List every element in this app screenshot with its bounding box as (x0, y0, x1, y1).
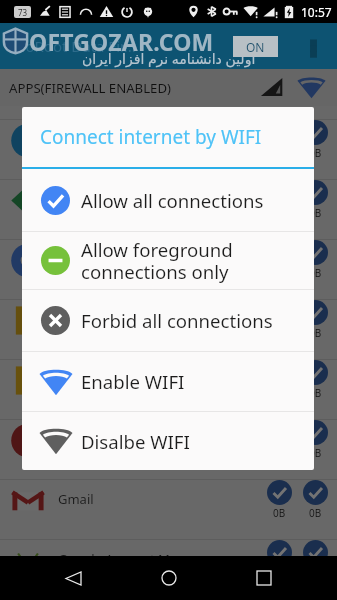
button[interactable]: Chrome (0, 240, 337, 299)
staticText: 0B (309, 386, 322, 400)
staticText: 0B (309, 506, 322, 520)
staticText: اولین دانشنامه نرم افزار ایران (82, 49, 256, 68)
button[interactable]: Back (51, 556, 95, 600)
button[interactable]: Google Account Manager (0, 540, 337, 599)
staticText: Enable WIFI (81, 369, 185, 394)
button[interactable]: Allow all connections (22, 169, 314, 231)
button[interactable]: ON (233, 36, 278, 57)
staticText: Drive (58, 310, 91, 328)
staticText: 0B (309, 446, 322, 460)
staticText: Disalbe WIFI (81, 429, 190, 454)
staticText: Calendar (58, 130, 113, 148)
staticText: Docs (58, 370, 88, 388)
staticText: 0B (309, 326, 322, 340)
staticText: ON (246, 39, 265, 55)
staticText: Chrome (58, 250, 107, 268)
button[interactable]: Drive (0, 300, 337, 359)
button[interactable]: Docs (0, 360, 337, 419)
button[interactable]: Calendar (0, 120, 337, 179)
staticText: Camera (58, 190, 106, 208)
staticText: Gmail (58, 490, 94, 508)
staticText: Forbid all connections (81, 308, 273, 333)
button[interactable]: Enable WIFI (22, 352, 314, 411)
button[interactable]: Gmail (0, 480, 337, 539)
button[interactable]: Camera (0, 180, 337, 239)
staticText: Google Account Manager (58, 550, 214, 568)
staticText: 0B (309, 206, 322, 220)
staticText: Duo (58, 430, 84, 448)
button[interactable]: More options (301, 34, 325, 58)
button[interactable]: Recent apps (242, 556, 286, 600)
button[interactable]: Home (147, 556, 191, 600)
staticText: Allow all connections (81, 188, 264, 213)
staticText: Connect internet by WIFI (40, 124, 262, 150)
button[interactable]: Forbid all connections (22, 290, 314, 351)
staticText: 0B (309, 266, 322, 280)
staticText: APPS(FIREWALL ENABLED) (9, 79, 172, 97)
staticText: Allow foreground connections only (81, 237, 233, 285)
button[interactable]: Disalbe WIFI (22, 412, 314, 470)
button[interactable]: Duo (0, 420, 337, 479)
staticText: OFTGOZAR.COM (29, 26, 214, 57)
staticText: 73 (18, 7, 28, 18)
staticText: 0B (309, 146, 322, 160)
staticText: 10:57 (301, 4, 332, 20)
staticText: 0B (273, 506, 286, 520)
button[interactable]: Allow foreground connections only (22, 232, 314, 289)
staticText: NoRoot Data Fir... (14, 36, 136, 56)
